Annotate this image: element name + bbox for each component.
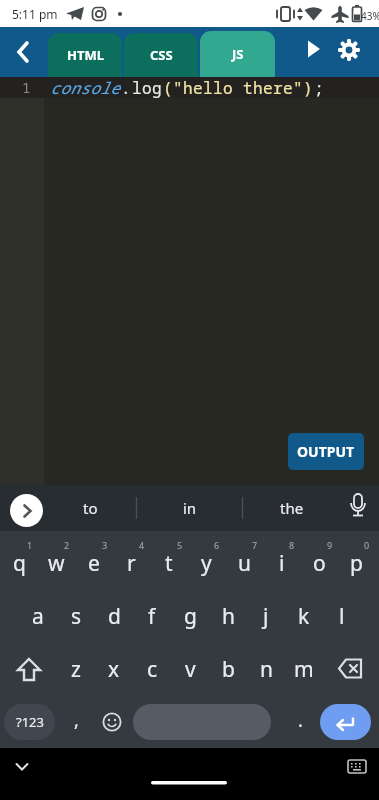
staticText: 3	[102, 539, 108, 551]
button[interactable]: n	[247, 643, 285, 696]
staticText: v	[185, 655, 196, 684]
button[interactable]	[10, 494, 43, 527]
button[interactable]: s	[57, 590, 95, 643]
staticText: d	[108, 602, 121, 631]
button[interactable]	[8, 755, 36, 779]
button[interactable]: the	[243, 485, 340, 531]
button[interactable]	[93, 696, 131, 748]
button[interactable]: ?123	[4, 704, 55, 740]
staticText: 1	[27, 539, 33, 551]
button[interactable]: g	[171, 590, 209, 643]
staticText: e	[88, 549, 100, 578]
staticText: x	[108, 655, 120, 684]
button[interactable]: k	[285, 590, 323, 643]
staticText: ,	[74, 708, 79, 733]
staticText: 5	[177, 539, 183, 551]
button[interactable]	[323, 643, 379, 696]
staticText: .	[298, 708, 303, 733]
staticText: 5:11 pm	[12, 6, 58, 22]
staticText: z	[71, 655, 81, 684]
button[interactable]: c	[133, 643, 171, 696]
button[interactable]	[330, 27, 370, 77]
staticText: ;	[314, 77, 325, 98]
staticText: l	[339, 602, 345, 631]
button[interactable]: CSS	[124, 33, 198, 77]
staticText: t	[165, 549, 173, 578]
button[interactable]: in	[137, 485, 242, 531]
button[interactable]: d	[95, 590, 133, 643]
staticText: 7	[252, 539, 258, 551]
staticText: OUTPUT	[297, 442, 355, 461]
button[interactable]: JS	[200, 31, 275, 77]
button[interactable]: p	[338, 537, 375, 590]
button[interactable]: y	[188, 537, 225, 590]
button[interactable]: w	[38, 537, 75, 590]
staticText: 2	[64, 539, 70, 551]
button[interactable]: a	[19, 590, 57, 643]
staticText: log	[132, 77, 163, 98]
staticText: 9	[327, 539, 333, 551]
staticText: ?123	[16, 713, 44, 731]
staticText: 4	[139, 539, 145, 551]
staticText: 8	[289, 539, 295, 551]
staticText: 43%	[361, 9, 379, 23]
staticText: y	[201, 549, 212, 578]
staticText: h	[222, 602, 235, 631]
staticText: a	[32, 602, 44, 631]
button[interactable]: .	[271, 696, 320, 748]
button[interactable]: r	[113, 537, 150, 590]
staticText: 6	[214, 539, 220, 551]
button[interactable]: l	[323, 590, 361, 643]
button[interactable]: o	[300, 537, 338, 590]
staticText: q	[13, 549, 26, 578]
staticText: f	[148, 602, 156, 631]
staticText: j	[263, 602, 269, 631]
button[interactable]	[292, 27, 334, 77]
button[interactable]: i	[263, 537, 300, 590]
staticText: .	[121, 77, 132, 98]
button[interactable]	[0, 643, 57, 696]
button[interactable]: HTML	[48, 33, 122, 77]
staticText: the	[280, 498, 304, 518]
staticText: r	[127, 549, 136, 578]
button[interactable]: v	[171, 643, 209, 696]
button[interactable]	[0, 27, 48, 77]
staticText: u	[238, 549, 251, 578]
button[interactable]: to	[44, 485, 136, 531]
button[interactable]: x	[95, 643, 133, 696]
staticText: m	[294, 655, 314, 684]
button[interactable]: z	[57, 643, 95, 696]
staticText: i	[279, 549, 285, 578]
staticText: k	[298, 602, 310, 631]
staticText: n	[260, 655, 273, 684]
button[interactable]: f	[133, 590, 171, 643]
staticText: 0	[364, 539, 370, 551]
staticText: CSS	[150, 46, 173, 64]
button[interactable]: ,	[55, 696, 93, 748]
staticText: p	[350, 549, 363, 578]
button[interactable]: t	[150, 537, 188, 590]
staticText: c	[147, 655, 158, 684]
staticText: console	[50, 77, 121, 98]
button[interactable]	[133, 704, 271, 740]
button[interactable]: j	[247, 590, 285, 643]
staticText: 1	[22, 78, 31, 97]
staticText: o	[313, 549, 326, 578]
button[interactable]: u	[225, 537, 263, 590]
staticText: b	[222, 655, 235, 684]
button[interactable]	[320, 704, 371, 740]
staticText: to	[83, 498, 98, 518]
staticText: JS	[232, 45, 244, 63]
staticText: ("hello there")	[163, 77, 314, 98]
staticText: g	[184, 602, 197, 631]
button[interactable]: q	[0, 537, 38, 590]
staticText: w	[48, 549, 65, 578]
button[interactable]: h	[209, 590, 247, 643]
staticText: HTML	[67, 46, 104, 64]
button[interactable]: b	[209, 643, 247, 696]
staticText: s	[71, 602, 82, 631]
button[interactable]: m	[285, 643, 323, 696]
staticText: in	[183, 498, 197, 518]
button[interactable]: e	[75, 537, 113, 590]
button[interactable]: OUTPUT	[288, 433, 364, 470]
